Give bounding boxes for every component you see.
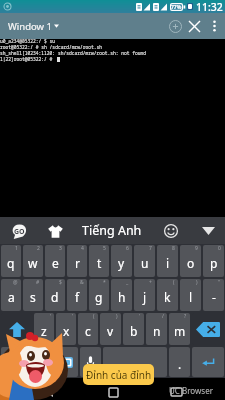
staticText: Tiếng Anh bbox=[82, 222, 142, 239]
staticText: + bbox=[149, 279, 152, 286]
button[interactable]: ) bbox=[180, 279, 201, 311]
button[interactable]: 6 bbox=[111, 245, 132, 277]
button[interactable]: Backspace bbox=[192, 313, 224, 345]
button[interactable]: Emoji bbox=[160, 220, 182, 242]
staticText: j bbox=[143, 289, 147, 305]
staticText: ?123 bbox=[17, 357, 39, 371]
staticText: n bbox=[153, 323, 161, 339]
button[interactable]: @ bbox=[1, 279, 21, 311]
button[interactable]: 2 bbox=[23, 245, 43, 277]
button[interactable]: ‘ bbox=[34, 313, 54, 345]
button[interactable]: 3 bbox=[45, 245, 65, 277]
button[interactable]: Enter bbox=[192, 347, 224, 377]
button[interactable]: Close window bbox=[185, 13, 203, 39]
button[interactable]: Shift bbox=[1, 313, 32, 345]
staticText: 2 bbox=[37, 245, 40, 252]
button[interactable]: $ bbox=[45, 279, 65, 311]
staticText: & bbox=[80, 279, 84, 286]
button[interactable]: / bbox=[146, 313, 167, 345]
staticText: b bbox=[130, 323, 138, 339]
button[interactable]: 8 bbox=[157, 245, 178, 277]
staticText: 7 bbox=[149, 245, 152, 252]
button[interactable]: ? bbox=[169, 313, 190, 345]
staticText: e bbox=[52, 255, 59, 271]
staticText: 5 bbox=[103, 245, 106, 252]
staticText: ) bbox=[116, 313, 118, 320]
staticText: 3 bbox=[59, 245, 62, 252]
staticText: v bbox=[107, 323, 114, 339]
button[interactable]: & bbox=[67, 279, 87, 311]
button[interactable]: Window 1 bbox=[0, 13, 67, 39]
staticText: Đỉnh của đỉnh bbox=[86, 368, 152, 382]
button[interactable]: Home bbox=[98, 381, 128, 400]
staticText: 4 bbox=[81, 245, 84, 252]
staticText: ' bbox=[139, 313, 141, 320]
staticText: a bbox=[8, 289, 15, 305]
staticText: @ bbox=[13, 279, 18, 286]
button[interactable]: " bbox=[203, 279, 224, 311]
staticText: ( bbox=[173, 279, 175, 286]
button[interactable]: More options bbox=[203, 13, 225, 39]
staticText: ( bbox=[93, 313, 95, 320]
button[interactable]: Hide keyboard bbox=[196, 218, 221, 243]
button[interactable]: 9 bbox=[180, 245, 201, 277]
button[interactable]: GO Keyboard menu bbox=[9, 221, 29, 241]
button[interactable]: 0 bbox=[203, 245, 224, 277]
staticText: ‘ bbox=[50, 313, 51, 320]
button[interactable]: + bbox=[134, 279, 155, 311]
staticText: 11:32 bbox=[196, 0, 223, 13]
staticText: m bbox=[174, 323, 186, 339]
button[interactable]: ' bbox=[123, 313, 144, 345]
button[interactable]: . bbox=[169, 347, 190, 377]
staticText: * bbox=[103, 279, 106, 286]
button[interactable]: _ bbox=[111, 279, 132, 311]
staticText: 1|22]root@05322:/ # bbox=[0, 56, 56, 62]
button[interactable]: Recent apps bbox=[161, 381, 191, 400]
staticText: 77% bbox=[171, 4, 182, 11]
button[interactable]: ?123 bbox=[1, 347, 55, 377]
button[interactable]: Back bbox=[34, 381, 64, 400]
staticText: w bbox=[28, 255, 38, 271]
button[interactable]: ’ bbox=[56, 313, 76, 345]
staticText: y bbox=[118, 255, 125, 271]
staticText: UC Browser bbox=[169, 385, 213, 396]
button[interactable]: * bbox=[89, 279, 109, 311]
button[interactable] bbox=[80, 347, 101, 377]
staticText: d bbox=[51, 289, 59, 305]
staticText: g bbox=[95, 289, 103, 305]
staticText: l bbox=[189, 289, 193, 305]
staticText: 9 bbox=[195, 245, 198, 252]
staticText: f bbox=[75, 289, 80, 305]
button[interactable] bbox=[57, 347, 78, 377]
staticText: p bbox=[210, 255, 218, 271]
staticText: GO bbox=[14, 227, 25, 237]
staticText: . bbox=[178, 356, 182, 372]
staticText: ’ bbox=[72, 313, 73, 320]
staticText: 1 bbox=[15, 245, 18, 252]
staticText: u bbox=[141, 255, 149, 271]
staticText: u0_a234@05322:/ $ su bbox=[0, 38, 56, 44]
button[interactable]: New window bbox=[165, 13, 185, 39]
staticText: $ bbox=[59, 279, 62, 286]
button[interactable]: 7 bbox=[134, 245, 155, 277]
staticText: s bbox=[30, 289, 36, 305]
staticText: " bbox=[218, 279, 221, 286]
staticText: root@05322:/ # sh /sdcard/mrw/root.sh bbox=[0, 44, 102, 50]
button[interactable] bbox=[103, 347, 167, 377]
button[interactable]: ( bbox=[78, 313, 98, 345]
staticText: c bbox=[85, 323, 91, 339]
button[interactable]: 5 bbox=[89, 245, 109, 277]
button[interactable]: Đỉnh của đỉnh bbox=[83, 364, 154, 385]
button[interactable]: 4 bbox=[67, 245, 87, 277]
staticText: z bbox=[41, 323, 47, 339]
staticText: 6 bbox=[126, 245, 129, 252]
staticText: k bbox=[164, 289, 171, 305]
staticText: t bbox=[97, 255, 102, 271]
button[interactable]: 1 bbox=[1, 245, 21, 277]
staticText: o bbox=[187, 255, 195, 271]
button[interactable]: ( bbox=[157, 279, 178, 311]
staticText: i bbox=[166, 255, 170, 271]
button[interactable]: # bbox=[23, 279, 43, 311]
button[interactable]: Themes bbox=[45, 221, 65, 241]
button[interactable]: ) bbox=[100, 313, 121, 345]
